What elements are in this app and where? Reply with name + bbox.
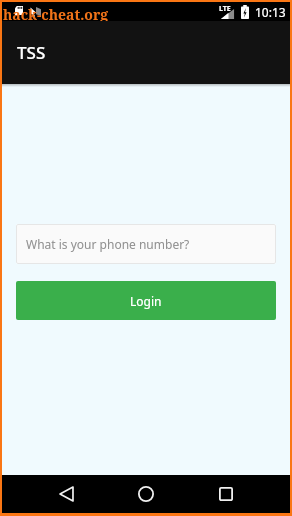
button[interactable]: TSS [2,21,290,84]
button[interactable]: Login [16,281,276,320]
button[interactable]: Back [20,475,112,513]
button[interactable]: Home [112,475,180,513]
staticText: 10:13 [255,4,286,20]
staticText: What is your phone number? [26,236,190,252]
staticText: Login [130,293,162,309]
button[interactable]: Recents [180,475,272,513]
staticText: LTE [219,4,231,14]
staticText: hack-cheat.org [3,5,109,24]
staticText: TSS [17,41,46,64]
button[interactable]: What is your phone number? [16,224,276,264]
